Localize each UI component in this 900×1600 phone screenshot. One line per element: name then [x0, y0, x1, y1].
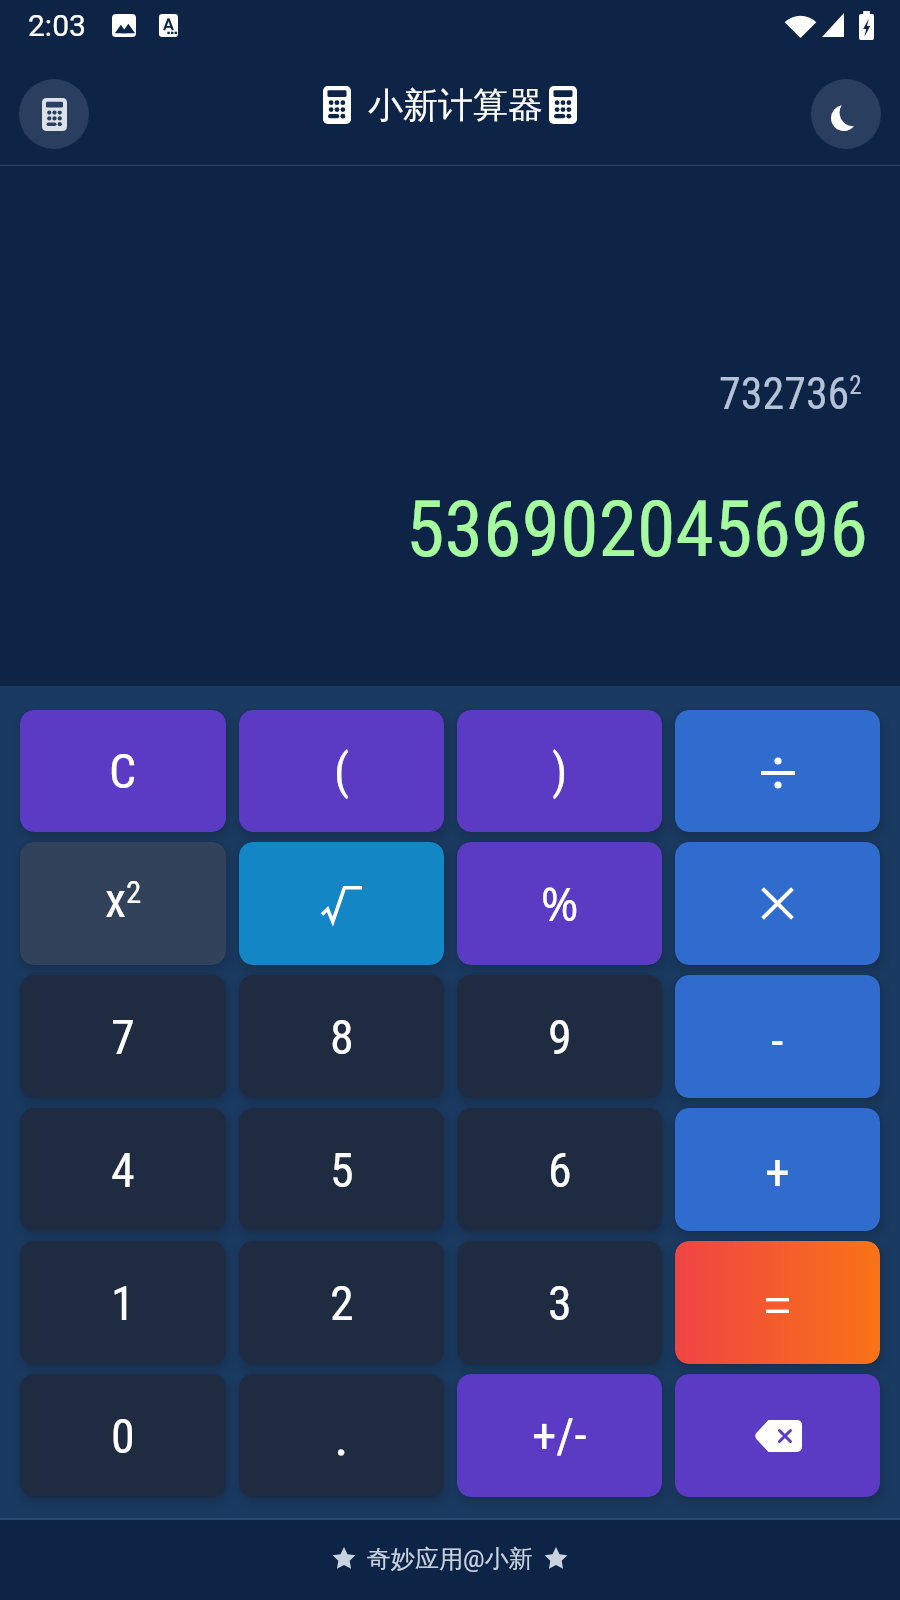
button[interactable]: 9 — [457, 975, 662, 1098]
staticText: ( — [334, 743, 350, 799]
button[interactable]: Dark mode — [811, 79, 881, 149]
staticText: + — [765, 1144, 790, 1203]
button[interactable]: 2 — [239, 1241, 444, 1364]
staticText: 7 — [111, 1009, 135, 1065]
button[interactable]: C — [20, 710, 226, 832]
button[interactable]: % — [457, 842, 662, 965]
button[interactable]: 4 — [20, 1108, 226, 1231]
button[interactable]: 1 — [20, 1241, 226, 1364]
button[interactable]: 7 — [20, 975, 226, 1098]
staticText: - — [771, 1012, 784, 1071]
staticText: C — [109, 743, 137, 799]
button[interactable]: ) — [457, 710, 662, 832]
staticText: 4 — [111, 1142, 135, 1198]
staticText: . — [334, 1403, 349, 1469]
staticText: +/- — [532, 1407, 587, 1464]
button[interactable]: Calculator — [19, 79, 89, 149]
staticText: 9 — [548, 1009, 572, 1065]
staticText: 3 — [548, 1275, 572, 1331]
button[interactable]: +/- — [457, 1374, 662, 1497]
staticText: 6 — [548, 1142, 572, 1198]
button[interactable]: + — [675, 1108, 880, 1231]
staticText: 7327362 — [719, 368, 862, 420]
button[interactable]: Square root — [239, 842, 444, 965]
staticText: 1 — [111, 1275, 135, 1331]
button[interactable]: Divide — [675, 710, 880, 832]
staticText: 2 — [330, 1275, 354, 1331]
button[interactable]: - — [675, 975, 880, 1098]
button[interactable]: ( — [239, 710, 444, 832]
staticText: 0 — [111, 1408, 135, 1464]
button[interactable]: Multiply — [675, 842, 880, 965]
staticText: 小新计算器 — [368, 83, 543, 127]
button[interactable]: Equals — [675, 1241, 880, 1364]
staticText: 5 — [330, 1142, 354, 1198]
button[interactable]: 8 — [239, 975, 444, 1098]
button[interactable]: 6 — [457, 1108, 662, 1231]
staticText: 536902045696 — [406, 484, 869, 575]
staticText: % — [541, 873, 579, 934]
staticText: ) — [552, 743, 568, 799]
staticText: x2 — [105, 872, 142, 928]
staticText: 2:03 — [28, 8, 86, 43]
button[interactable]: Backspace — [675, 1374, 880, 1497]
staticText: 奇妙应用@小新 — [367, 1544, 533, 1574]
button[interactable]: 0 — [20, 1374, 226, 1497]
staticText: 8 — [330, 1009, 354, 1065]
button[interactable]: . — [239, 1374, 444, 1497]
button[interactable]: x2 — [20, 842, 226, 965]
button[interactable]: 5 — [239, 1108, 444, 1231]
button[interactable]: 3 — [457, 1241, 662, 1364]
